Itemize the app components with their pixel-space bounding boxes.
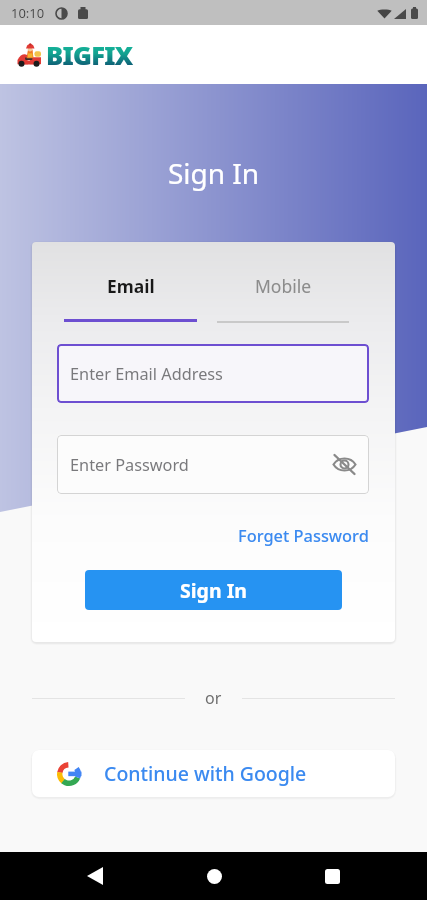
staticText: Sign In (0, 154, 427, 192)
staticText: Enter Email Address (70, 363, 223, 385)
button[interactable]: Home (190, 852, 238, 900)
button[interactable]: Forget Password (238, 524, 369, 546)
staticText: 10:10 (11, 4, 45, 22)
staticText: BIGFIX (46, 38, 133, 73)
button[interactable]: Enter Password (57, 435, 369, 494)
button[interactable]: Continue with Google (32, 750, 395, 797)
button[interactable]: Email (64, 274, 197, 322)
staticText: Enter Password (70, 454, 189, 476)
staticText: Email (107, 274, 155, 298)
button[interactable]: Mobile (217, 274, 349, 323)
button[interactable]: Recents (308, 852, 356, 900)
button[interactable]: Enter Email Address (57, 344, 369, 403)
button[interactable]: Show password (332, 452, 357, 477)
staticText: Continue with Google (104, 760, 307, 787)
staticText: Sign In (180, 577, 247, 604)
staticText: Mobile (255, 274, 312, 298)
staticText: or (205, 687, 222, 709)
button[interactable]: Sign In (85, 570, 342, 610)
button[interactable]: Back (71, 852, 119, 900)
